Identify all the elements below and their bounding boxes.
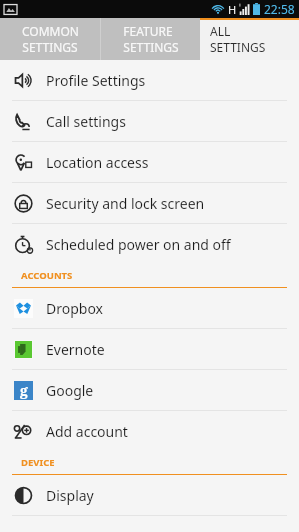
other: Add account — [14, 422, 33, 441]
button[interactable]: FEATURE — [101, 18, 200, 60]
button[interactable]: Display — [0, 475, 299, 515]
staticText: Google — [46, 381, 94, 400]
staticText: Call settings — [46, 112, 126, 131]
staticText: H — [228, 2, 237, 17]
button[interactable]: Location access — [0, 142, 299, 182]
other: Google — [14, 381, 33, 400]
staticText: DEVICE — [21, 456, 55, 469]
staticText: COMMON — [22, 23, 79, 39]
button[interactable]: Call settings — [0, 101, 299, 141]
staticText: SETTINGS — [123, 39, 179, 55]
other: Evernote — [14, 340, 33, 359]
button[interactable]: Google — [0, 370, 299, 410]
button[interactable]: ALL — [200, 18, 299, 60]
button[interactable]: Dropbox — [0, 288, 299, 328]
staticText: SETTINGS — [210, 39, 266, 55]
staticText: g — [20, 381, 28, 400]
staticText: ALL — [210, 23, 231, 39]
other: Display — [14, 486, 33, 505]
button[interactable]: Add account — [0, 411, 299, 451]
staticText: Security and lock screen — [46, 194, 205, 213]
staticText: Display — [46, 486, 94, 505]
other: Location access — [14, 153, 33, 172]
staticText: ACCOUNTS — [21, 269, 73, 282]
staticText: Profile Settings — [46, 71, 146, 90]
staticText: Evernote — [46, 340, 105, 359]
staticText: Location access — [46, 153, 149, 172]
button[interactable]: Security and lock screen — [0, 183, 299, 223]
staticText: Add account — [46, 422, 128, 441]
button[interactable]: COMMON — [0, 18, 100, 60]
other: Security and lock screen — [14, 194, 33, 213]
staticText: Scheduled power on and off — [46, 235, 231, 254]
staticText: FEATURE — [123, 23, 173, 39]
other: Scheduled power on and off — [14, 235, 33, 254]
other: Call settings — [14, 112, 33, 131]
button[interactable]: Scheduled power on and off — [0, 224, 299, 264]
staticText: Dropbox — [46, 299, 104, 318]
staticText: 22:58 — [264, 1, 295, 17]
staticText: SETTINGS — [22, 39, 78, 55]
button[interactable]: Evernote — [0, 329, 299, 369]
button[interactable]: Profile Settings — [0, 60, 299, 100]
other: Profile Settings — [14, 71, 33, 90]
other: Dropbox — [14, 299, 33, 318]
